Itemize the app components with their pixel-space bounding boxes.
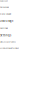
staticText: Data usage <box>0 19 13 23</box>
staticText: WIRELESS & NETWORKS <box>0 41 16 43</box>
staticText: Data usage <box>0 6 9 8</box>
staticText: WIRELESS & NETWORKS <box>0 47 19 49</box>
staticText: Data usage <box>0 12 11 15</box>
staticText: Settings <box>0 33 11 37</box>
staticText: Data usage <box>0 0 8 2</box>
staticText: Settings <box>0 26 8 29</box>
